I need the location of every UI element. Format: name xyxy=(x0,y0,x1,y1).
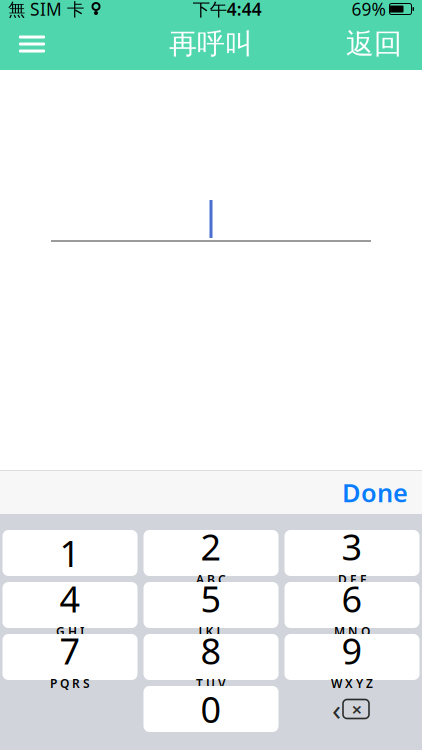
staticText: 3 xyxy=(341,523,362,570)
button[interactable]: 8 xyxy=(143,634,278,680)
staticText: 0 xyxy=(200,685,221,733)
staticText: D E F xyxy=(338,571,366,587)
staticText: G H I xyxy=(56,623,84,639)
button[interactable]: 5 xyxy=(143,582,278,628)
staticText: P Q R S xyxy=(50,675,90,691)
button[interactable]: 6 xyxy=(284,582,419,628)
staticText: 69% xyxy=(351,0,385,20)
staticText: 1 xyxy=(59,529,80,577)
staticText: Done xyxy=(342,476,408,509)
staticText: 再呼叫 xyxy=(169,27,253,61)
staticText: ‹ xyxy=(332,689,341,728)
staticText: A B C xyxy=(196,571,226,587)
button[interactable]: Done xyxy=(328,471,422,514)
button[interactable]: 2 xyxy=(143,530,278,576)
button[interactable]: 0 xyxy=(143,686,278,732)
staticText: 2 xyxy=(200,523,221,570)
button[interactable]: 返回 xyxy=(332,18,416,70)
staticText: 5 xyxy=(200,575,221,622)
button[interactable]: 1 xyxy=(2,530,137,576)
staticText: T U V xyxy=(196,675,226,691)
staticText: 無 SIM 卡 xyxy=(8,0,84,20)
staticText: J K L xyxy=(198,623,223,639)
staticText: W X Y Z xyxy=(331,675,373,691)
staticText: 8 xyxy=(200,627,221,674)
button[interactable]: Delete xyxy=(284,686,419,732)
staticText: 6 xyxy=(341,575,362,622)
staticText: 9 xyxy=(341,627,362,674)
button[interactable]: 9 xyxy=(284,634,419,680)
staticText: 4 xyxy=(59,575,80,622)
button[interactable]: 3 xyxy=(284,530,419,576)
button[interactable]: Menu xyxy=(6,18,58,70)
staticText: 下午4:44 xyxy=(193,0,262,20)
button[interactable]: 7 xyxy=(2,634,137,680)
staticText: × xyxy=(351,697,362,721)
staticText: 7 xyxy=(59,627,80,674)
button[interactable]: 4 xyxy=(2,582,137,628)
staticText: M N O xyxy=(334,623,370,639)
staticText: 返回 xyxy=(346,27,402,61)
